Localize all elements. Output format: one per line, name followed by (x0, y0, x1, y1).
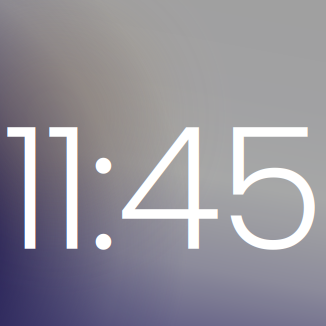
staticText: 11:45 (0, 84, 326, 292)
